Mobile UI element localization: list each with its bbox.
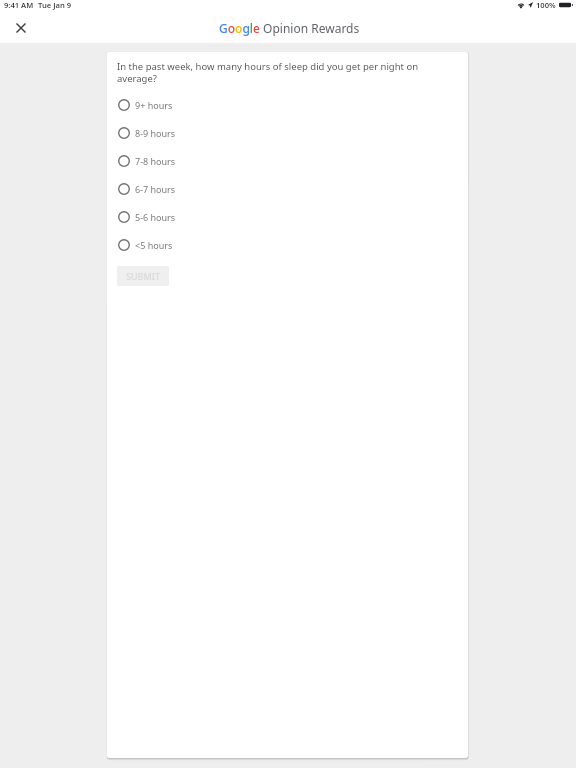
staticText: <5 hours xyxy=(135,239,173,251)
button[interactable]: 8-9 hours xyxy=(117,119,458,147)
staticText: 8-9 hours xyxy=(135,127,176,139)
staticText: 100% xyxy=(536,0,556,10)
button[interactable]: 9+ hours xyxy=(117,91,458,119)
button[interactable]: 7-8 hours xyxy=(117,147,458,175)
button[interactable]: <5 hours xyxy=(117,231,458,259)
staticText: 6-7 hours xyxy=(135,183,176,195)
button[interactable]: SUBMIT xyxy=(117,266,169,286)
staticText: Google Opinion Rewards xyxy=(219,20,360,36)
staticText: SUBMIT xyxy=(126,270,160,282)
staticText: 7-8 hours xyxy=(135,155,176,167)
button[interactable]: 5-6 hours xyxy=(117,203,458,231)
staticText: In the past week, how many hours of slee… xyxy=(117,60,458,85)
staticText: 9+ hours xyxy=(135,99,173,111)
staticText: Tue Jan 9 xyxy=(38,0,72,10)
button[interactable]: Close xyxy=(9,16,33,40)
button[interactable]: 6-7 hours xyxy=(117,175,458,203)
staticText: 5-6 hours xyxy=(135,211,176,223)
staticText: 9:41 AM xyxy=(4,0,34,10)
